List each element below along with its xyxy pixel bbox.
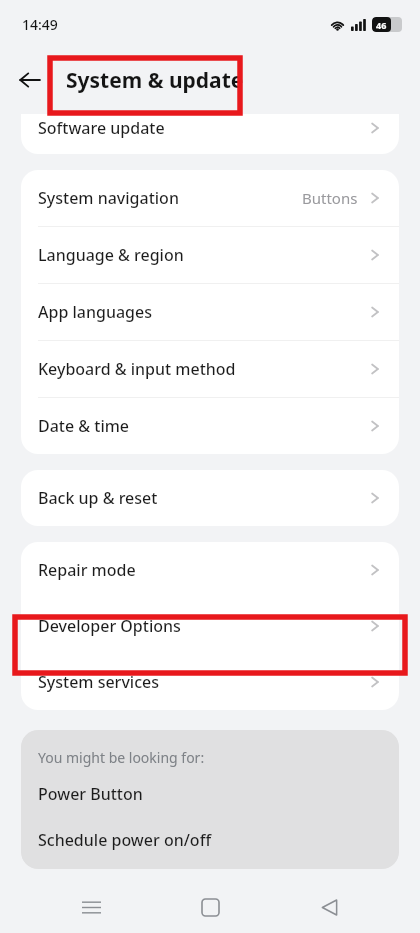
staticText: System & update — [66, 66, 244, 95]
staticText: Language & region — [38, 244, 184, 266]
button[interactable]: System navigation — [21, 170, 399, 226]
button[interactable]: Schedule power on/off — [38, 829, 382, 851]
staticText: Power Button — [38, 783, 143, 805]
staticText: System navigation — [38, 187, 179, 209]
staticText: You might be looking for: — [38, 748, 205, 767]
button[interactable]: System services — [21, 654, 399, 710]
button[interactable]: Language & region — [21, 227, 399, 283]
staticText: System services — [38, 671, 159, 693]
staticText: Developer Options — [38, 615, 181, 637]
button[interactable]: Back up & reset — [21, 470, 399, 526]
button[interactable]: Software update — [21, 114, 399, 142]
button[interactable]: Back — [8, 58, 52, 102]
staticText: Repair mode — [38, 559, 136, 581]
button[interactable]: Back — [301, 881, 357, 933]
button[interactable]: Developer Options — [21, 598, 399, 654]
staticText: Back up & reset — [38, 487, 158, 509]
button[interactable]: App languages — [21, 284, 399, 340]
staticText: 46 — [376, 19, 387, 31]
button[interactable]: Keyboard & input method — [21, 341, 399, 397]
staticText: App languages — [38, 301, 152, 323]
staticText: Schedule power on/off — [38, 829, 212, 851]
button[interactable]: Home — [182, 881, 238, 933]
button[interactable]: Repair mode — [21, 542, 399, 598]
button[interactable]: Power Button — [38, 783, 382, 805]
staticText: Date & time — [38, 415, 130, 437]
button[interactable]: Recents — [63, 881, 119, 933]
staticText: 14:49 — [22, 15, 58, 34]
staticText: Buttons — [302, 188, 358, 208]
button[interactable]: Date & time — [21, 398, 399, 454]
staticText: Software update — [38, 117, 165, 139]
staticText: Keyboard & input method — [38, 358, 236, 380]
